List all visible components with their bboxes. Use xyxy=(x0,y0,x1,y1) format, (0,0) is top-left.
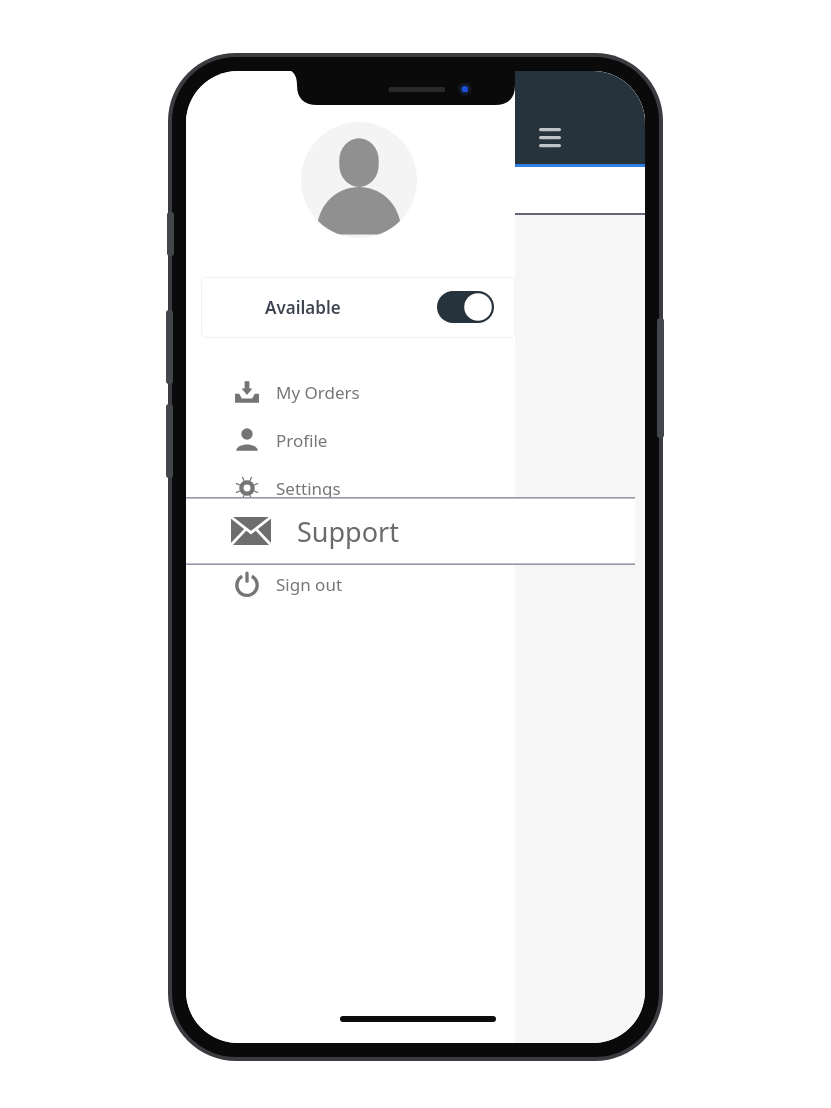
button[interactable]: Availability toggle, on xyxy=(437,291,494,323)
staticText: Available xyxy=(265,296,341,319)
button[interactable]: Profile xyxy=(210,416,510,464)
button[interactable]: My Orders xyxy=(210,368,510,416)
staticText: My Orders xyxy=(276,381,360,404)
button[interactable]: Settings xyxy=(210,464,510,512)
button[interactable]: Support xyxy=(186,497,635,565)
staticText: Settings xyxy=(276,477,341,500)
staticText: Support xyxy=(297,513,399,550)
staticText: Profile xyxy=(276,429,328,452)
button[interactable]: Open navigation menu xyxy=(535,121,573,153)
button[interactable]: Available xyxy=(201,277,515,338)
staticText: Sign out xyxy=(276,573,343,596)
button[interactable]: Sign out xyxy=(210,560,510,608)
